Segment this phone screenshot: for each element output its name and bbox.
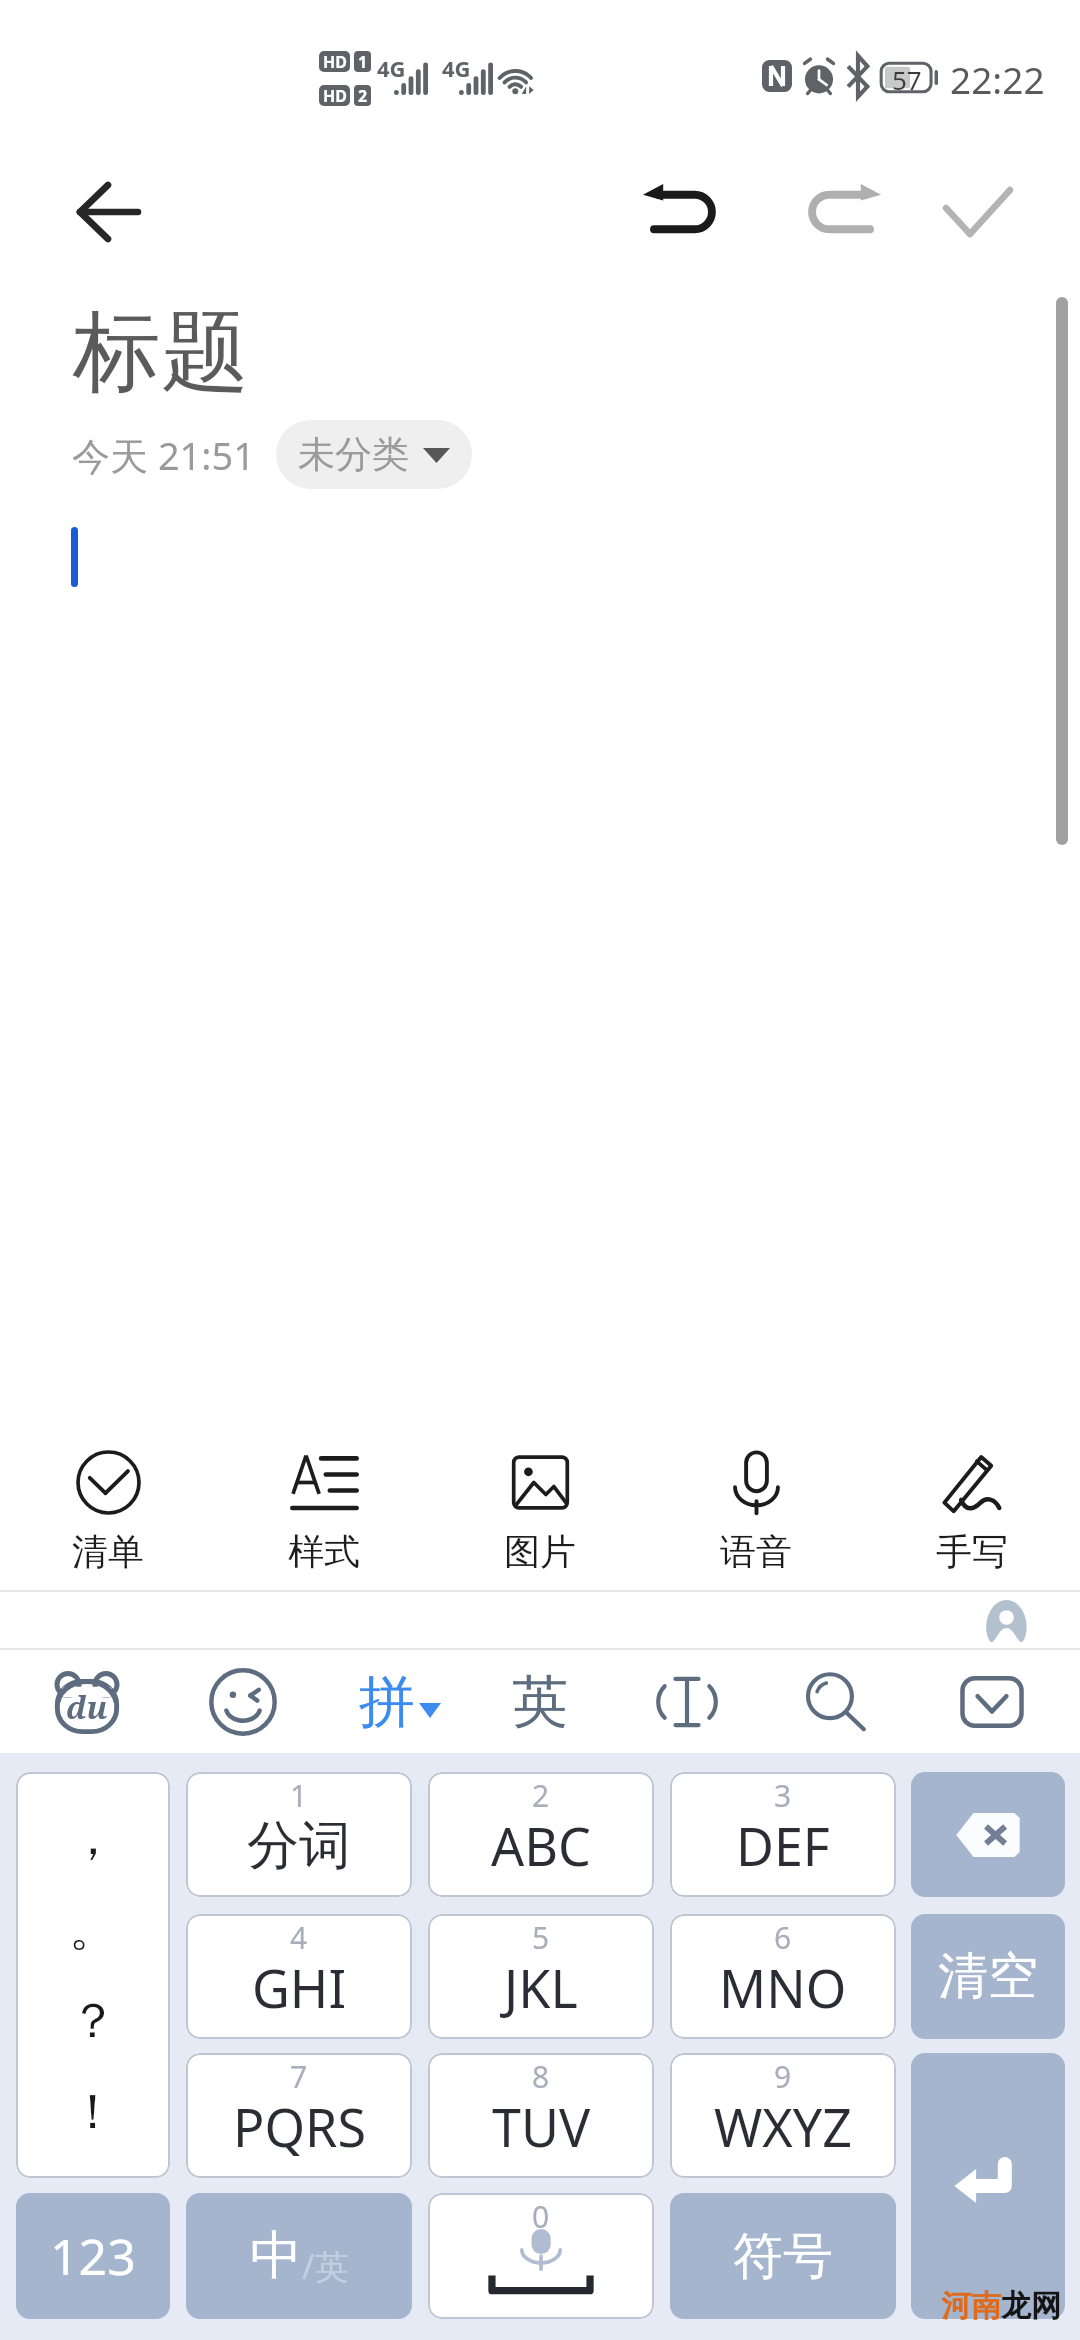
staticText: 1 [290, 1775, 308, 1816]
staticText: 英 [512, 1667, 568, 1738]
staticText: DEF [736, 1810, 830, 1881]
button[interactable]: 清单 [0, 1437, 216, 1577]
staticText: 符号 [733, 2225, 833, 2288]
button[interactable]: 3 [670, 1772, 896, 1897]
staticText: JKL [504, 1952, 578, 2023]
staticText: 5 [532, 1917, 550, 1958]
button[interactable]: 未分类 [276, 420, 472, 489]
staticText: 0 [532, 2196, 550, 2237]
staticText: 中 [250, 2223, 302, 2289]
staticText: 手写 [936, 1529, 1008, 1574]
staticText: 3 [774, 1775, 792, 1816]
staticText: 7 [290, 2056, 308, 2097]
button[interactable]: 图片 [432, 1437, 648, 1577]
staticText: 6 [774, 1917, 792, 1958]
staticText: 4G [442, 53, 471, 83]
button[interactable]: 手写 [864, 1437, 1080, 1577]
button[interactable]: Move cursor [633, 1662, 741, 1742]
staticText: 2 [358, 85, 368, 106]
staticText: ？ [69, 1991, 117, 2051]
button[interactable]: 样式 [216, 1437, 432, 1577]
button[interactable]: Done [928, 176, 1020, 248]
button[interactable]: Baidu [33, 1662, 141, 1742]
staticText: 4 [290, 1917, 308, 1958]
staticText: HD [323, 51, 347, 72]
staticText: 龙网 [1001, 2287, 1061, 2325]
button[interactable]: 语音 [648, 1437, 864, 1577]
staticText: 22:22 [950, 54, 1045, 104]
staticText: 57 [892, 62, 922, 97]
button[interactable] [911, 1772, 1065, 1897]
button[interactable]: 英 [486, 1662, 594, 1742]
button[interactable]: 中 [186, 2193, 412, 2319]
staticText: ABC [491, 1810, 591, 1881]
staticText: WXYZ [714, 2091, 853, 2162]
staticText: 清空 [938, 1945, 1038, 2008]
staticText: 分词 [247, 1813, 351, 1879]
staticText: 标题 [73, 297, 249, 408]
staticText: MNO [719, 1952, 847, 2023]
staticText: PQRS [233, 2091, 366, 2162]
staticText: du [66, 1686, 108, 1728]
button[interactable]: 8 [428, 2053, 654, 2178]
button[interactable]: Emoji [189, 1662, 297, 1742]
staticText: 清单 [72, 1529, 144, 1574]
staticText: 123 [50, 2222, 136, 2290]
button[interactable]: ， [16, 1772, 170, 2178]
staticText: 河南 [941, 2287, 1001, 2325]
button[interactable]: Back [52, 160, 164, 272]
staticText: 2 [532, 1775, 550, 1816]
button[interactable]: 9 [670, 2053, 896, 2178]
staticText: 4G [377, 53, 406, 83]
staticText: TUV [492, 2091, 591, 2162]
button[interactable]: 拼 [346, 1662, 454, 1742]
button[interactable]: 清空 [911, 1914, 1065, 2039]
staticText: 拼 [359, 1667, 415, 1738]
button[interactable]: 5 [428, 1914, 654, 2039]
button[interactable]: Undo [642, 176, 734, 248]
button[interactable]: 2 [428, 1772, 654, 1897]
staticText: 今天 21:51 [72, 429, 256, 481]
staticText: GHI [252, 1952, 347, 2023]
staticText: 图片 [504, 1529, 576, 1574]
staticText: ！ [69, 2082, 117, 2142]
button[interactable]: 符号 [670, 2193, 896, 2319]
button[interactable]: 7 [186, 2053, 412, 2178]
staticText: 样式 [288, 1529, 360, 1574]
button[interactable]: Hide keyboard [938, 1662, 1046, 1742]
staticText: 未分类 [298, 431, 409, 478]
button[interactable]: 6 [670, 1914, 896, 2039]
button[interactable]: Search [781, 1662, 889, 1742]
button[interactable] [911, 2053, 1065, 2319]
button[interactable]: 123 [16, 2193, 170, 2319]
staticText: 1 [358, 51, 368, 72]
staticText: HD [323, 85, 347, 106]
staticText: /英 [302, 2243, 349, 2289]
button[interactable]: 4 [186, 1914, 412, 2039]
staticText: 。 [69, 1899, 117, 1959]
button[interactable]: 0 [428, 2193, 654, 2319]
button[interactable]: 1 [186, 1772, 412, 1897]
button[interactable]: Redo [790, 176, 882, 248]
staticText: 8 [532, 2056, 550, 2097]
staticText: 9 [774, 2056, 792, 2097]
staticText: 语音 [720, 1529, 792, 1574]
staticText: ， [69, 1808, 117, 1868]
